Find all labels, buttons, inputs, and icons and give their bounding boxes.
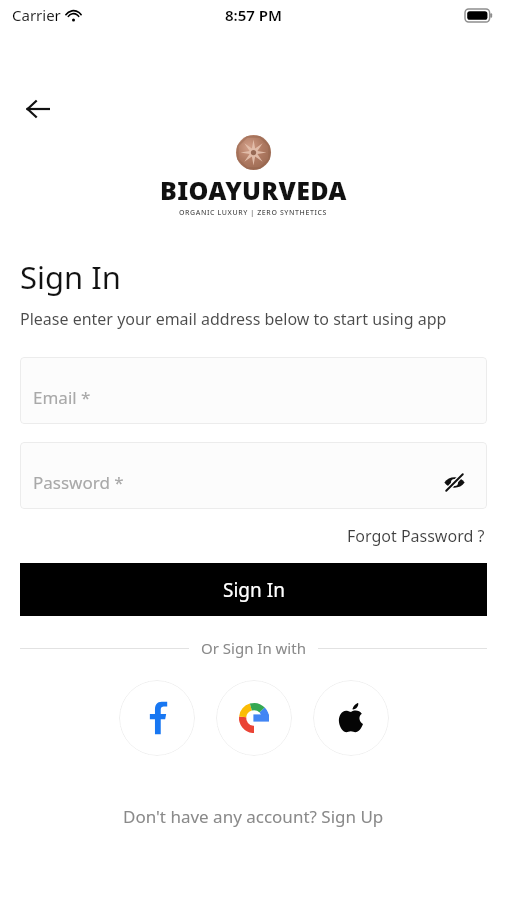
staticText: Or Sign In with [201, 638, 306, 658]
button[interactable]: Email * [20, 357, 487, 424]
staticText: Email * [33, 386, 91, 409]
staticText: Don't have any account? Sign Up [123, 805, 384, 828]
button[interactable]: Show password [439, 467, 469, 497]
button[interactable]: Sign In [20, 563, 487, 616]
staticText: Please enter your email address below to… [20, 308, 447, 330]
staticText: Sign In [223, 577, 285, 603]
button[interactable]: Sign in with Google [216, 680, 292, 756]
button[interactable]: Don't have any account? Sign Up [119, 801, 388, 832]
button[interactable]: Forgot Password ? [345, 523, 487, 549]
staticText: ORGANIC LUXURY | ZERO SYNTHETICS [179, 208, 328, 218]
staticText: 8:57 PM [225, 5, 282, 25]
staticText: Forgot Password ? [347, 525, 485, 547]
staticText: Password * [33, 471, 124, 494]
staticText: Carrier [12, 5, 61, 25]
staticText: BIOAYURVEDA [160, 173, 347, 207]
button[interactable]: Sign in with Facebook [119, 680, 195, 756]
button[interactable]: Sign in with Apple [313, 680, 389, 756]
staticText: Sign In [20, 256, 121, 298]
button[interactable]: Password * [20, 442, 487, 509]
button[interactable]: Back [14, 85, 62, 133]
